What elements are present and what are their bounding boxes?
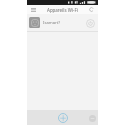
button[interactable]: Isamart? bbox=[27, 14, 98, 31]
button[interactable]: Power toggle bbox=[84, 17, 96, 29]
staticText: Appareils Wi-Fi bbox=[47, 7, 78, 13]
button[interactable]: Add device bbox=[56, 111, 69, 124]
button[interactable]: Menu bbox=[29, 5, 38, 14]
button[interactable]: More options bbox=[87, 113, 97, 123]
staticText: Isamart? bbox=[43, 20, 84, 26]
button[interactable]: Refresh bbox=[87, 5, 96, 14]
